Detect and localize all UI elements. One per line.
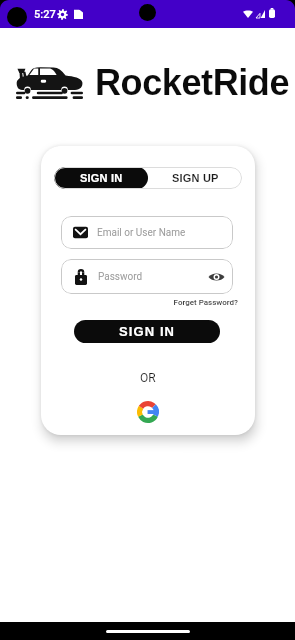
button[interactable]: SIGN UP bbox=[148, 167, 242, 189]
staticText: Email or User Name bbox=[97, 227, 186, 239]
button[interactable]: Sign in with Google bbox=[135, 399, 161, 425]
staticText: SIGN IN bbox=[80, 172, 123, 184]
button[interactable]: Forget Password? bbox=[137, 296, 238, 308]
button[interactable]: Password bbox=[61, 259, 233, 294]
button[interactable]: Show password bbox=[207, 268, 225, 286]
staticText: SIGN UP bbox=[172, 172, 219, 184]
staticText: OR bbox=[140, 371, 156, 385]
button[interactable]: SIGN IN bbox=[54, 167, 148, 189]
staticText: SIGN IN bbox=[119, 324, 176, 339]
button[interactable]: SIGN IN bbox=[74, 320, 220, 343]
staticText: RocketRide bbox=[95, 62, 290, 102]
button[interactable]: Email or User Name bbox=[61, 216, 233, 249]
staticText: Forget Password? bbox=[173, 298, 238, 307]
staticText: Password bbox=[98, 271, 207, 283]
staticText: 5:27 bbox=[34, 8, 56, 21]
